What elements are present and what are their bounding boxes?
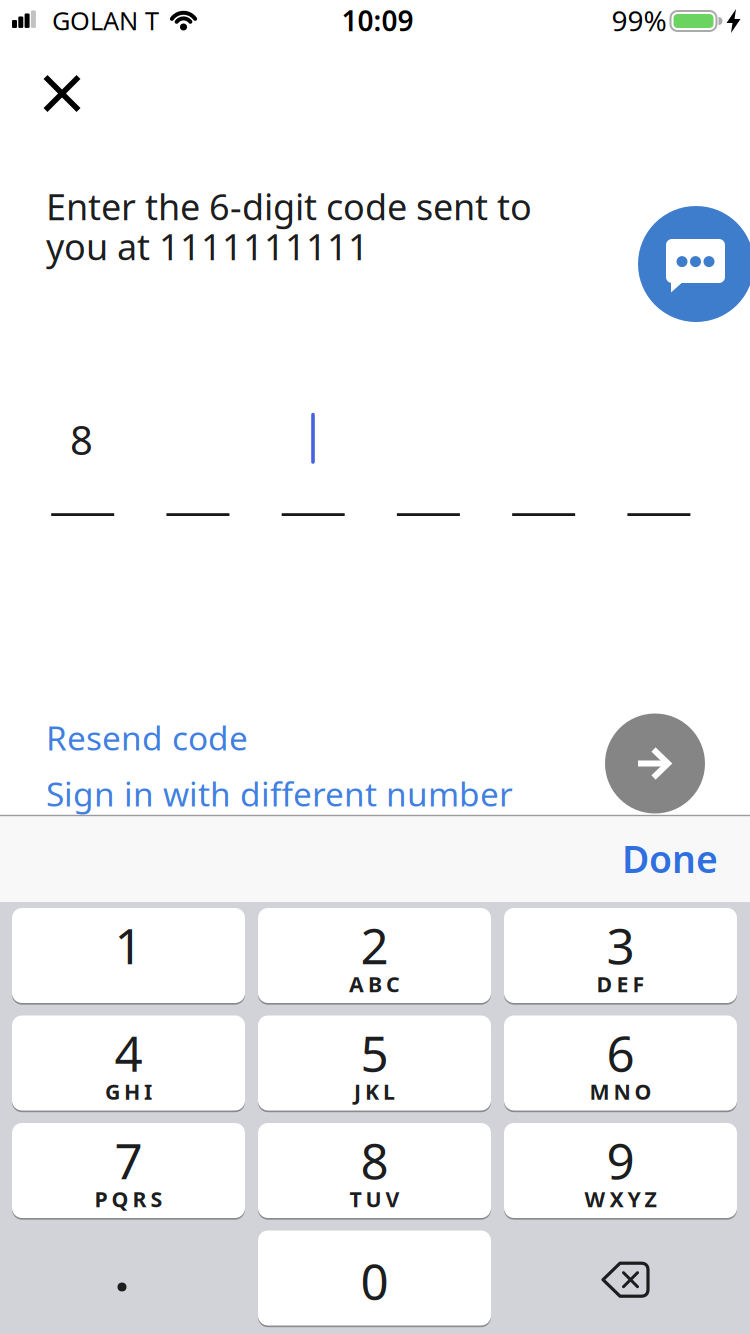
button[interactable]: 6 xyxy=(504,1015,737,1110)
staticText: WXYZ xyxy=(584,1185,656,1213)
button[interactable]: Next xyxy=(605,713,705,813)
staticText: JKL xyxy=(354,1077,395,1106)
staticText: 0 xyxy=(360,1248,388,1313)
button[interactable]: Decimal point xyxy=(12,1230,245,1325)
button[interactable]: Resend code xyxy=(46,715,248,760)
staticText: you at 1111111111 xyxy=(46,222,369,270)
button[interactable]: 8 xyxy=(258,1123,491,1218)
staticText: GHI xyxy=(105,1077,152,1106)
button[interactable]: 3 xyxy=(504,908,737,1003)
staticText: PQRS xyxy=(94,1185,162,1213)
staticText: DEF xyxy=(596,970,644,998)
staticText: GOLAN T xyxy=(52,4,159,37)
staticText: 5 xyxy=(360,1020,388,1085)
staticText: 4 xyxy=(114,1020,142,1085)
button[interactable]: 9 xyxy=(504,1123,737,1218)
button[interactable]: 2 xyxy=(258,908,491,1003)
button[interactable]: Delete xyxy=(504,1230,737,1325)
button[interactable]: Sign in with different number xyxy=(46,771,513,816)
staticText: Enter the 6-digit code sent to xyxy=(46,182,532,230)
button[interactable]: Close xyxy=(40,71,84,115)
staticText: 10:09 xyxy=(341,2,413,39)
staticText: TUV xyxy=(349,1185,399,1213)
staticText: 9 xyxy=(606,1127,634,1193)
staticText: 3 xyxy=(606,912,634,978)
staticText: MNO xyxy=(589,1077,651,1106)
button[interactable]: 4 xyxy=(12,1015,245,1110)
button[interactable]: 7 xyxy=(12,1123,245,1218)
staticText: 2 xyxy=(360,912,388,978)
staticText: 6 xyxy=(606,1020,634,1085)
button[interactable]: 0 xyxy=(258,1230,491,1325)
staticText: 7 xyxy=(114,1127,142,1193)
staticText: 8 xyxy=(70,413,93,466)
staticText: Done xyxy=(622,834,718,883)
staticText: ABC xyxy=(349,970,400,998)
button[interactable]: 1 xyxy=(12,908,245,1003)
staticText: 99% xyxy=(611,2,666,39)
button[interactable]: 5 xyxy=(258,1015,491,1110)
staticText: 8 xyxy=(360,1127,388,1193)
staticText: 1 xyxy=(114,912,142,978)
staticText: Sign in with different number xyxy=(46,771,513,816)
staticText: Resend code xyxy=(46,715,248,760)
button[interactable]: Done xyxy=(622,834,718,883)
